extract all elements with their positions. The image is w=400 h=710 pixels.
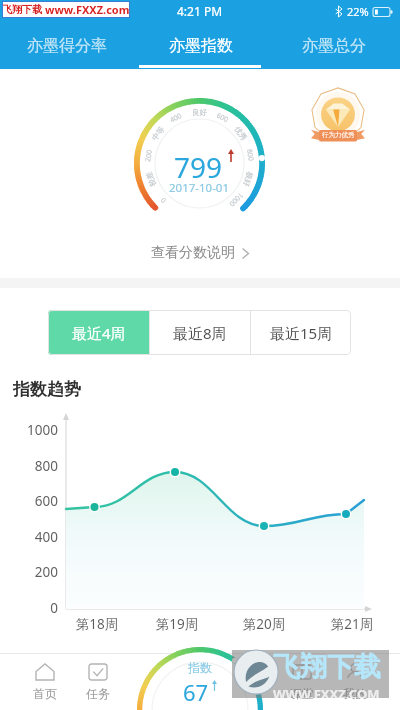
staticText: 指数趋势 (13, 379, 81, 400)
staticText: 4:21 PM (177, 3, 223, 19)
button[interactable]: 我的 (329, 663, 381, 701)
button[interactable]: 亦墨总分 (267, 22, 400, 69)
button[interactable]: 亦墨得分率 (0, 22, 134, 69)
staticText: 400 (12, 528, 58, 546)
button[interactable]: 最近8周 (150, 310, 250, 355)
staticText: www.FXXZ.com (45, 2, 130, 17)
staticText: 我的 (343, 686, 367, 701)
staticText: 600 (12, 492, 58, 510)
button[interactable]: 首页 (19, 663, 71, 701)
button[interactable]: 指数 (137, 647, 263, 710)
staticText: 最近8周 (173, 323, 227, 343)
button[interactable]: 最近4周 (48, 310, 149, 355)
staticText: 飞翔下载 (2, 3, 42, 16)
button[interactable]: 亦墨指数 (134, 22, 267, 69)
staticText: 800 (12, 457, 58, 475)
staticText: 亦墨指数 (169, 36, 233, 56)
staticText: 1000 (12, 421, 58, 439)
staticText: 指数 (188, 660, 212, 675)
staticText: 首页 (33, 686, 57, 701)
staticText: 最近4周 (72, 323, 126, 343)
staticText: 第19周 (151, 615, 203, 633)
staticText: 0 (12, 599, 58, 617)
button[interactable]: 课堂 (276, 663, 328, 701)
staticText: 任务 (86, 686, 110, 701)
staticText: WWW.FXXZ.COM (273, 685, 380, 698)
staticText: 课堂 (290, 686, 314, 701)
staticText: 最近15周 (270, 323, 333, 343)
staticText: 飞翔下载 (273, 650, 381, 684)
staticText: 亦墨得分率 (27, 36, 107, 56)
staticText: 22% (347, 4, 369, 19)
staticText: 200 (12, 563, 58, 581)
staticText: 第18周 (71, 615, 123, 633)
staticText: 查看分数说明 (151, 244, 235, 262)
button[interactable]: 最近15周 (251, 310, 351, 355)
staticText: 亦墨总分 (302, 36, 366, 56)
button[interactable]: 任务 (72, 663, 124, 701)
staticText: 799 (174, 148, 223, 186)
staticText: 第21周 (326, 615, 378, 633)
button[interactable]: 查看分数说明 (151, 244, 249, 262)
staticText: 67 (183, 677, 209, 707)
staticText: 行为力优秀 (322, 131, 355, 139)
staticText: 2017-10-01 (169, 180, 230, 196)
staticText: 第20周 (238, 615, 290, 633)
